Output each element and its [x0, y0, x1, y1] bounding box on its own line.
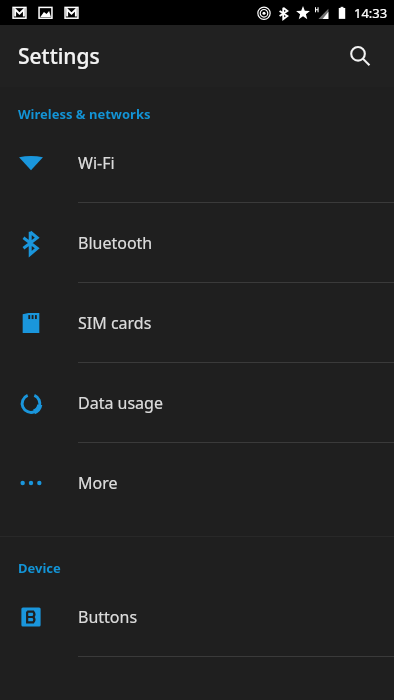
button[interactable]: Wi-Fi	[0, 123, 394, 202]
button[interactable]: SIM cards	[0, 283, 394, 362]
staticText: Data usage	[78, 392, 163, 414]
button[interactable]: Buttons	[0, 577, 394, 656]
button[interactable]: More	[0, 443, 394, 522]
staticText: Wireless & networks	[18, 105, 151, 123]
button[interactable]: Bluetooth	[0, 203, 394, 282]
staticText: Bluetooth	[78, 232, 153, 254]
staticText: SIM cards	[78, 312, 152, 334]
staticText: Settings	[18, 42, 100, 71]
staticText: 14:33	[354, 4, 388, 22]
staticText: Wi-Fi	[78, 152, 115, 174]
button[interactable]: Data usage	[0, 363, 394, 442]
staticText: Buttons	[78, 606, 138, 628]
staticText: More	[78, 472, 118, 494]
staticText: Device	[18, 559, 61, 577]
button[interactable]: Search	[336, 32, 384, 80]
